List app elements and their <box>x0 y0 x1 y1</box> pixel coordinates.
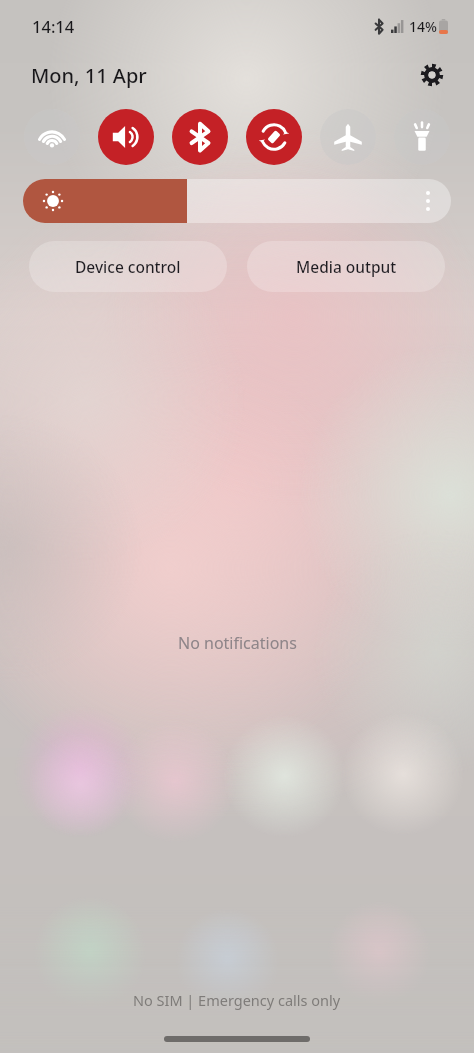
staticText: No SIM | Emergency calls only <box>133 990 341 1010</box>
button[interactable]: Device control <box>29 241 227 292</box>
staticText: Media output <box>296 256 397 277</box>
staticText: Device control <box>75 256 181 277</box>
button[interactable]: Flashlight <box>394 109 450 165</box>
staticText: Mon, 11 Apr <box>31 62 147 89</box>
button[interactable]: Auto rotate <box>246 109 302 165</box>
button[interactable]: Airplane mode <box>320 109 376 165</box>
button[interactable]: Wi-Fi <box>24 109 80 165</box>
button[interactable]: Bluetooth <box>172 109 228 165</box>
button[interactable]: Settings <box>412 55 452 95</box>
button[interactable]: Brightness <box>23 179 451 223</box>
button[interactable]: Home gesture handle <box>164 1036 310 1042</box>
staticText: 14% <box>409 17 437 36</box>
button[interactable]: Media output <box>247 241 445 292</box>
staticText: No notifications <box>178 632 297 654</box>
button[interactable]: Sound <box>98 109 154 165</box>
staticText: 14:14 <box>32 15 75 37</box>
